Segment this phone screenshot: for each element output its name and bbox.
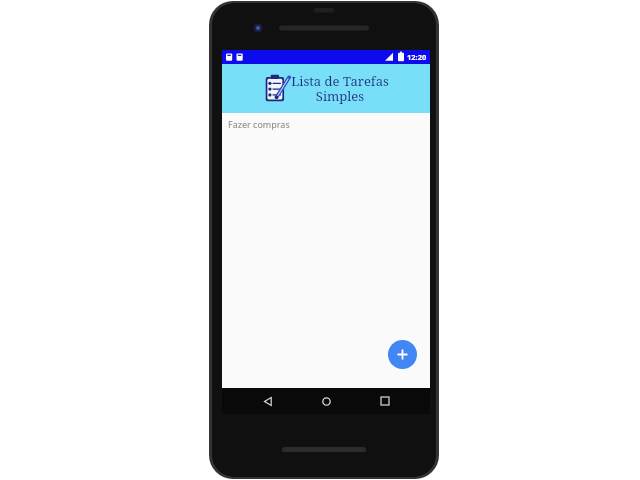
staticText: Fazer compras [228,118,290,130]
button[interactable]: Início [313,388,339,414]
button[interactable]: Voltar [255,388,281,414]
staticText: 12:20 [407,52,427,62]
button[interactable]: Adicionar tarefa [388,340,417,369]
staticText: Lista de Tarefas Simples [291,72,389,105]
button[interactable]: Recentes [372,388,398,414]
button[interactable]: Fazer compras [222,113,430,135]
